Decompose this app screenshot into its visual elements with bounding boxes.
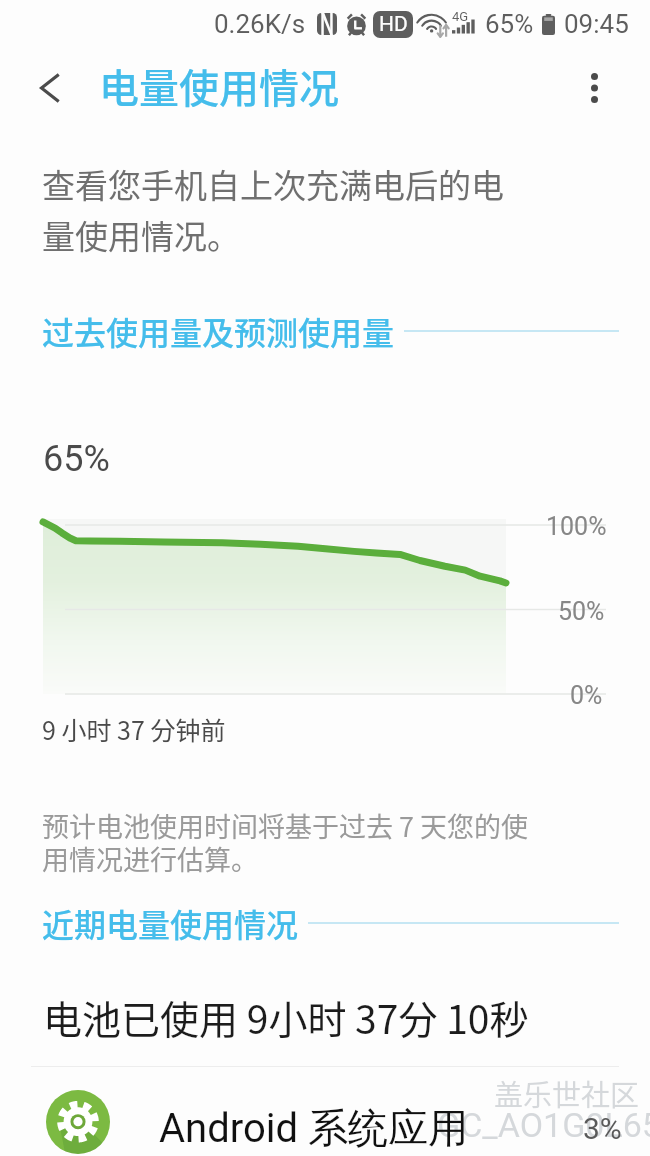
button[interactable]: Android 系统应用 (0, 1084, 650, 1156)
staticText: 65% (43, 438, 110, 480)
staticText: 查看您手机自上次充满电后的电量使用情况。 (42, 160, 522, 258)
staticText: Android 系统应用 (159, 1103, 468, 1153)
staticText: 预计电池使用时间将基于过去 7 天您的使用情况进行估算。 (42, 806, 542, 878)
button[interactable]: More options (562, 56, 626, 120)
staticText: 50% (558, 597, 605, 626)
staticText: 0.26K/s (214, 9, 306, 39)
staticText: 4G (452, 9, 469, 24)
staticText: 电池已使用 9小时 37分 10秒 (43, 989, 529, 1045)
staticText: 3% (583, 1111, 622, 1146)
staticText: GC_AO1G0L65 (437, 1105, 650, 1145)
staticText: 0% (570, 681, 603, 710)
staticText: 9 小时 37 分钟前 (42, 711, 226, 747)
staticText: HD (379, 12, 408, 37)
staticText: 65% (485, 9, 534, 39)
staticText: 09:45 (564, 9, 629, 39)
staticText: 100% (546, 512, 607, 541)
button[interactable]: Back (18, 56, 82, 120)
staticText: 盖乐世社区 (494, 1072, 640, 1114)
staticText: 过去使用量及预测使用量 (42, 308, 395, 354)
staticText: 电量使用情况 (99, 57, 339, 115)
staticText: 近期电量使用情况 (42, 900, 299, 946)
